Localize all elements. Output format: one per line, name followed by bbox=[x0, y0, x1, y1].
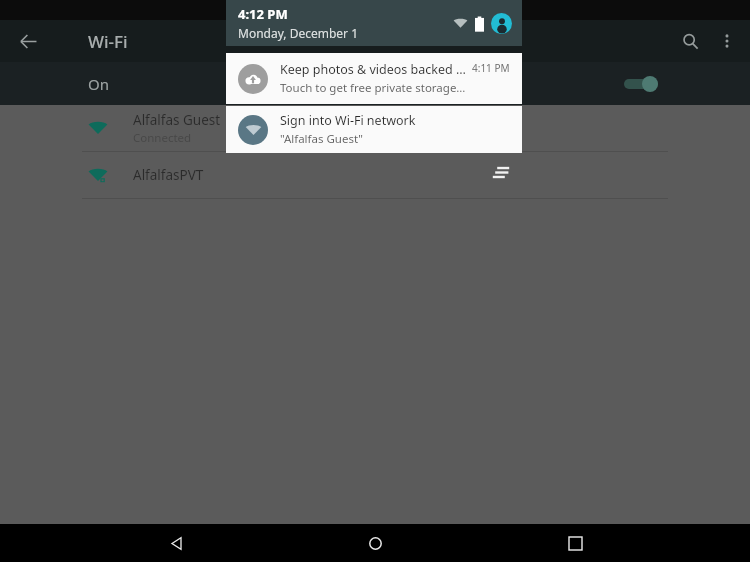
staticText: Connected bbox=[133, 130, 192, 146]
staticText: Keep photos & videos backed up bbox=[280, 61, 466, 78]
staticText: Sign into Wi-Fi network bbox=[280, 112, 416, 129]
staticText: Alfalfas Guest bbox=[133, 111, 221, 129]
button[interactable]: Keep photos & videos backed up bbox=[226, 53, 522, 104]
staticText: Monday, December 1 bbox=[238, 25, 359, 41]
button[interactable]: Search bbox=[670, 21, 710, 61]
staticText: Touch to get free private storage on Goo… bbox=[280, 80, 466, 96]
button[interactable]: 4:12 PM bbox=[226, 0, 522, 46]
staticText: On bbox=[88, 74, 109, 94]
staticText: Wi-Fi bbox=[88, 30, 128, 53]
button[interactable]: Sign into Wi-Fi network bbox=[226, 106, 522, 153]
staticText: "Alfalfas Guest" bbox=[280, 131, 364, 147]
button[interactable]: Recent apps bbox=[551, 524, 599, 562]
button[interactable]: More options bbox=[710, 24, 744, 58]
staticText: 4:11 PM bbox=[472, 61, 510, 75]
button[interactable]: On bbox=[0, 62, 750, 105]
button[interactable]: Home bbox=[351, 524, 399, 562]
staticText: AlfalfasPVT bbox=[133, 166, 204, 184]
button[interactable]: Back bbox=[8, 21, 48, 61]
button[interactable]: Back bbox=[152, 524, 200, 562]
staticText: 4:12 PM bbox=[238, 5, 288, 23]
button[interactable]: AlfalfasPVT bbox=[0, 152, 750, 198]
button[interactable]: User profile bbox=[491, 13, 512, 34]
button[interactable]: Alfalfas Guest bbox=[0, 105, 750, 151]
